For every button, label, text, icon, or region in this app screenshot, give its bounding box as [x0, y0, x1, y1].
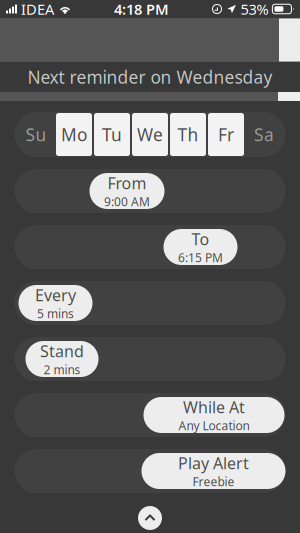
button[interactable]: While At	[14, 393, 285, 437]
button[interactable]: Play Alert	[14, 449, 285, 493]
staticText: 53%	[240, 0, 268, 19]
button[interactable]: Every	[14, 281, 285, 325]
button[interactable]: Su	[18, 113, 54, 156]
staticText: Mo	[61, 123, 87, 146]
button[interactable]: Mo	[56, 113, 92, 156]
staticText: Tu	[102, 123, 122, 146]
button[interactable]: Stand	[14, 337, 285, 381]
staticText: Stand	[40, 340, 84, 362]
staticText: 2 mins	[43, 362, 80, 378]
button[interactable]: Th	[170, 113, 206, 156]
staticText: To	[191, 228, 209, 250]
staticText: We	[137, 123, 163, 146]
button[interactable]: To	[14, 225, 285, 269]
staticText: Su	[25, 123, 46, 146]
staticText: Any Location	[178, 418, 249, 434]
staticText: Every	[35, 284, 76, 306]
button[interactable]: Collapse	[136, 504, 164, 532]
staticText: Freebie	[192, 474, 234, 490]
staticText: Play Alert	[178, 452, 249, 474]
staticText: Next reminder on Wednesday	[27, 65, 272, 88]
button[interactable]: Fr	[208, 113, 244, 156]
staticText: Sa	[254, 123, 274, 146]
staticText: While At	[183, 396, 245, 418]
staticText: 9:00 AM	[104, 194, 150, 210]
button[interactable]: Tu	[94, 113, 130, 156]
button[interactable]: From	[14, 169, 285, 213]
staticText: From	[107, 172, 146, 194]
staticText: 6:15 PM	[178, 250, 223, 266]
button[interactable]: Sa	[246, 113, 282, 156]
button[interactable]: We	[132, 113, 168, 156]
staticText: Fr	[218, 123, 234, 146]
staticText: 4:18 PM	[114, 0, 169, 19]
staticText: IDEA	[21, 0, 54, 19]
staticText: 5 mins	[37, 306, 74, 322]
staticText: Th	[177, 123, 198, 146]
